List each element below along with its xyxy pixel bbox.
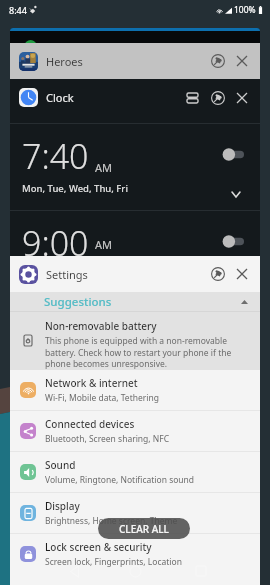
button[interactable]: CLEAR ALL: [98, 518, 190, 539]
staticText: 7:40: [22, 133, 89, 179]
staticText: AM: [95, 160, 113, 175]
button[interactable]: Network & internet: [10, 370, 260, 410]
staticText: Volume, Ringtone, Notification sound: [45, 474, 195, 486]
button[interactable]: Lock screen & security: [10, 534, 260, 574]
staticText: This phone is equipped with a non-remova…: [45, 335, 250, 370]
button[interactable]: Pin app: [205, 262, 231, 286]
staticText: Brightness, Home screen, Theme: [45, 515, 178, 527]
button[interactable]: Home: [120, 557, 150, 585]
staticText: Settings: [46, 267, 88, 282]
staticText: CLEAR ALL: [119, 522, 169, 536]
button[interactable]: Close: [231, 49, 253, 73]
button[interactable]: Connected devices: [10, 411, 260, 451]
button[interactable]: Expand alarm: [228, 187, 243, 202]
staticText: AM: [95, 237, 113, 252]
button[interactable]: Alarm toggle: [222, 148, 244, 161]
staticText: Wi-Fi, Mobile data, Tethering: [45, 392, 159, 404]
staticText: Non-removable battery: [45, 319, 157, 333]
staticText: Screen lock, Fingerprints, Location: [45, 556, 182, 568]
button[interactable]: Non-removable battery: [10, 312, 260, 370]
staticText: Clock: [46, 90, 74, 105]
staticText: Heroes: [46, 54, 83, 69]
button[interactable]: Close: [231, 262, 253, 286]
button[interactable]: Suggestions: [10, 292, 260, 311]
button[interactable]: Pin app: [205, 49, 231, 73]
button[interactable]: Pin app: [205, 86, 231, 110]
staticText: Bluetooth, Screen sharing, NFC: [45, 433, 170, 445]
staticText: Lock screen & security: [45, 540, 152, 554]
staticText: 8:44: [9, 4, 27, 16]
button[interactable]: 7:40: [10, 124, 260, 210]
button[interactable]: 9:00: [10, 211, 260, 256]
staticText: Connected devices: [45, 417, 135, 431]
button[interactable]: Display: [10, 493, 260, 533]
staticText: 100%: [234, 4, 256, 16]
button[interactable]: Sound: [10, 452, 260, 492]
staticText: Network & internet: [45, 376, 138, 390]
button[interactable]: Back: [59, 557, 89, 585]
staticText: Display: [45, 499, 80, 513]
button[interactable]: Split screen: [179, 86, 205, 110]
staticText: Suggestions: [44, 294, 112, 310]
staticText: Sound: [45, 458, 76, 472]
staticText: 9:00: [22, 220, 89, 256]
button[interactable]: Alarm toggle: [222, 235, 244, 248]
button[interactable]: Close: [231, 86, 253, 110]
staticText: Mon, Tue, Wed, Thu, Fri: [22, 182, 128, 195]
